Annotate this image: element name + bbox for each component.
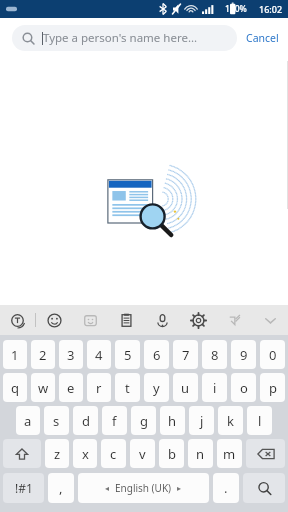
button[interactable]: 0 xyxy=(260,340,285,369)
staticText: f xyxy=(112,412,117,430)
staticText: v xyxy=(139,445,146,463)
staticText: m xyxy=(223,445,236,463)
staticText: o xyxy=(240,379,248,397)
staticText: r xyxy=(96,379,102,397)
button[interactable]: 2 xyxy=(31,340,55,369)
staticText: . xyxy=(224,479,228,497)
button[interactable]: Shift xyxy=(3,439,41,468)
button[interactable]: f xyxy=(102,406,127,435)
button[interactable]: z xyxy=(45,439,69,468)
button[interactable]: Clipboard xyxy=(108,305,144,335)
staticText: a xyxy=(24,412,32,430)
staticText: g xyxy=(140,412,148,430)
staticText: 6 xyxy=(153,346,161,364)
staticText: English (UK) xyxy=(115,481,172,495)
button[interactable]: 9 xyxy=(231,340,256,369)
button[interactable]: 7 xyxy=(173,340,198,369)
button[interactable]: m xyxy=(217,439,242,468)
button[interactable]: a xyxy=(16,406,40,435)
button[interactable]: Settings xyxy=(180,305,216,335)
button[interactable]: y xyxy=(144,373,169,402)
button[interactable]: Search xyxy=(12,25,237,51)
staticText: z xyxy=(54,445,61,463)
staticText: u xyxy=(181,379,190,397)
staticText: k xyxy=(227,412,234,430)
button[interactable]: q xyxy=(3,373,27,402)
button[interactable]: d xyxy=(73,406,98,435)
button[interactable]: Backspace xyxy=(246,439,285,468)
button[interactable]: o xyxy=(231,373,256,402)
button[interactable]: , xyxy=(48,473,74,503)
button[interactable]: Handwriting xyxy=(216,305,252,335)
staticText: h xyxy=(168,412,177,430)
staticText: e xyxy=(67,379,75,397)
staticText: y xyxy=(153,379,160,397)
button[interactable]: p xyxy=(260,373,285,402)
button[interactable]: c xyxy=(101,439,126,468)
button[interactable]: 5 xyxy=(115,340,140,369)
button[interactable]: e xyxy=(59,373,83,402)
button[interactable]: 8 xyxy=(202,340,227,369)
button[interactable]: Cancel xyxy=(237,31,288,45)
staticText: q xyxy=(11,379,19,397)
button[interactable]: Collapse xyxy=(252,305,288,335)
other: Search xyxy=(22,32,35,45)
button[interactable]: r xyxy=(87,373,111,402)
button[interactable]: l xyxy=(247,406,272,435)
button[interactable]: n xyxy=(188,439,213,468)
button[interactable]: 3 xyxy=(59,340,83,369)
button[interactable]: Text mode xyxy=(0,305,35,335)
staticText: 0 xyxy=(269,346,277,364)
button[interactable]: 1 xyxy=(3,340,27,369)
staticText: ▸ xyxy=(177,484,182,493)
button[interactable]: ◂ xyxy=(78,473,209,503)
staticText: 100% xyxy=(225,3,247,15)
button[interactable]: Voice input xyxy=(144,305,180,335)
staticText: !#1 xyxy=(15,480,33,496)
staticText: 9 xyxy=(240,346,248,364)
staticText: 2 xyxy=(39,346,47,364)
button[interactable]: x xyxy=(73,439,97,468)
staticText: 7 xyxy=(182,346,190,364)
button[interactable]: u xyxy=(173,373,198,402)
button[interactable]: Search xyxy=(243,473,285,503)
button[interactable]: w xyxy=(31,373,55,402)
staticText: w xyxy=(38,379,49,397)
staticText: 16:02 xyxy=(259,3,283,15)
staticText: x xyxy=(82,445,89,463)
button[interactable]: g xyxy=(131,406,156,435)
staticText: 4 xyxy=(95,346,103,364)
button[interactable]: . xyxy=(213,473,239,503)
button[interactable]: s xyxy=(44,406,69,435)
button[interactable]: h xyxy=(160,406,185,435)
button[interactable]: !#1 xyxy=(3,473,44,503)
button[interactable]: t xyxy=(115,373,140,402)
button[interactable]: i xyxy=(202,373,227,402)
staticText: 3 xyxy=(67,346,75,364)
staticText: , xyxy=(59,479,63,497)
button[interactable]: Stickers xyxy=(72,305,108,335)
staticText: b xyxy=(168,445,176,463)
staticText: j xyxy=(200,412,204,430)
button[interactable]: v xyxy=(130,439,155,468)
staticText: n xyxy=(196,445,205,463)
staticText: d xyxy=(82,412,90,430)
staticText: c xyxy=(110,445,117,463)
staticText: p xyxy=(269,379,277,397)
button[interactable]: j xyxy=(189,406,214,435)
staticText: 1 xyxy=(11,346,19,364)
staticText: t xyxy=(125,379,130,397)
staticText: l xyxy=(258,412,262,430)
staticText: ◂ xyxy=(105,484,110,493)
staticText: s xyxy=(53,412,60,430)
staticText: i xyxy=(213,379,217,397)
staticText: 5 xyxy=(124,346,132,364)
button[interactable]: 6 xyxy=(144,340,169,369)
button[interactable]: k xyxy=(218,406,243,435)
button[interactable]: 4 xyxy=(87,340,111,369)
staticText: Type a person's name here... xyxy=(43,30,198,46)
staticText: 8 xyxy=(211,346,219,364)
staticText: Cancel xyxy=(246,31,279,45)
button[interactable]: b xyxy=(159,439,184,468)
button[interactable]: Emoji xyxy=(36,305,72,335)
